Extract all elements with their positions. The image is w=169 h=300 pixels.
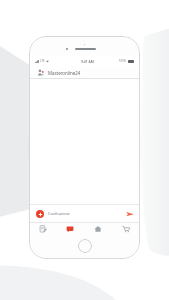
button[interactable]: Chat [56,223,84,235]
button[interactable]: Orders [29,223,56,235]
button[interactable]: Cart [112,223,140,235]
staticText: Сообщение [48,211,71,216]
button[interactable]: Send [125,209,134,218]
button[interactable]: Attach [36,210,44,218]
button[interactable]: Masteronline24 [29,67,140,78]
staticText: 100% [119,59,127,63]
button[interactable]: Home [84,223,112,235]
staticText: 9:41 AM [81,59,94,64]
staticText: Masteronline24 [48,70,81,76]
staticText: LTE [40,59,45,63]
